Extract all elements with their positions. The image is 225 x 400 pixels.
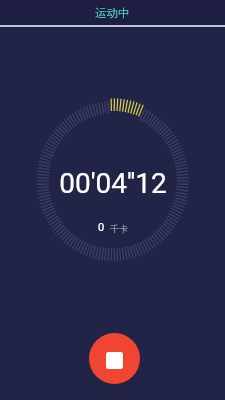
staticText: 千卡 (110, 223, 128, 234)
button[interactable]: 运动中 (87, 4, 138, 22)
staticText: 00'04''12 (59, 167, 167, 200)
staticText: 运动中 (95, 6, 130, 20)
staticText: 0 (98, 221, 105, 234)
button[interactable]: Stop workout (89, 333, 140, 384)
